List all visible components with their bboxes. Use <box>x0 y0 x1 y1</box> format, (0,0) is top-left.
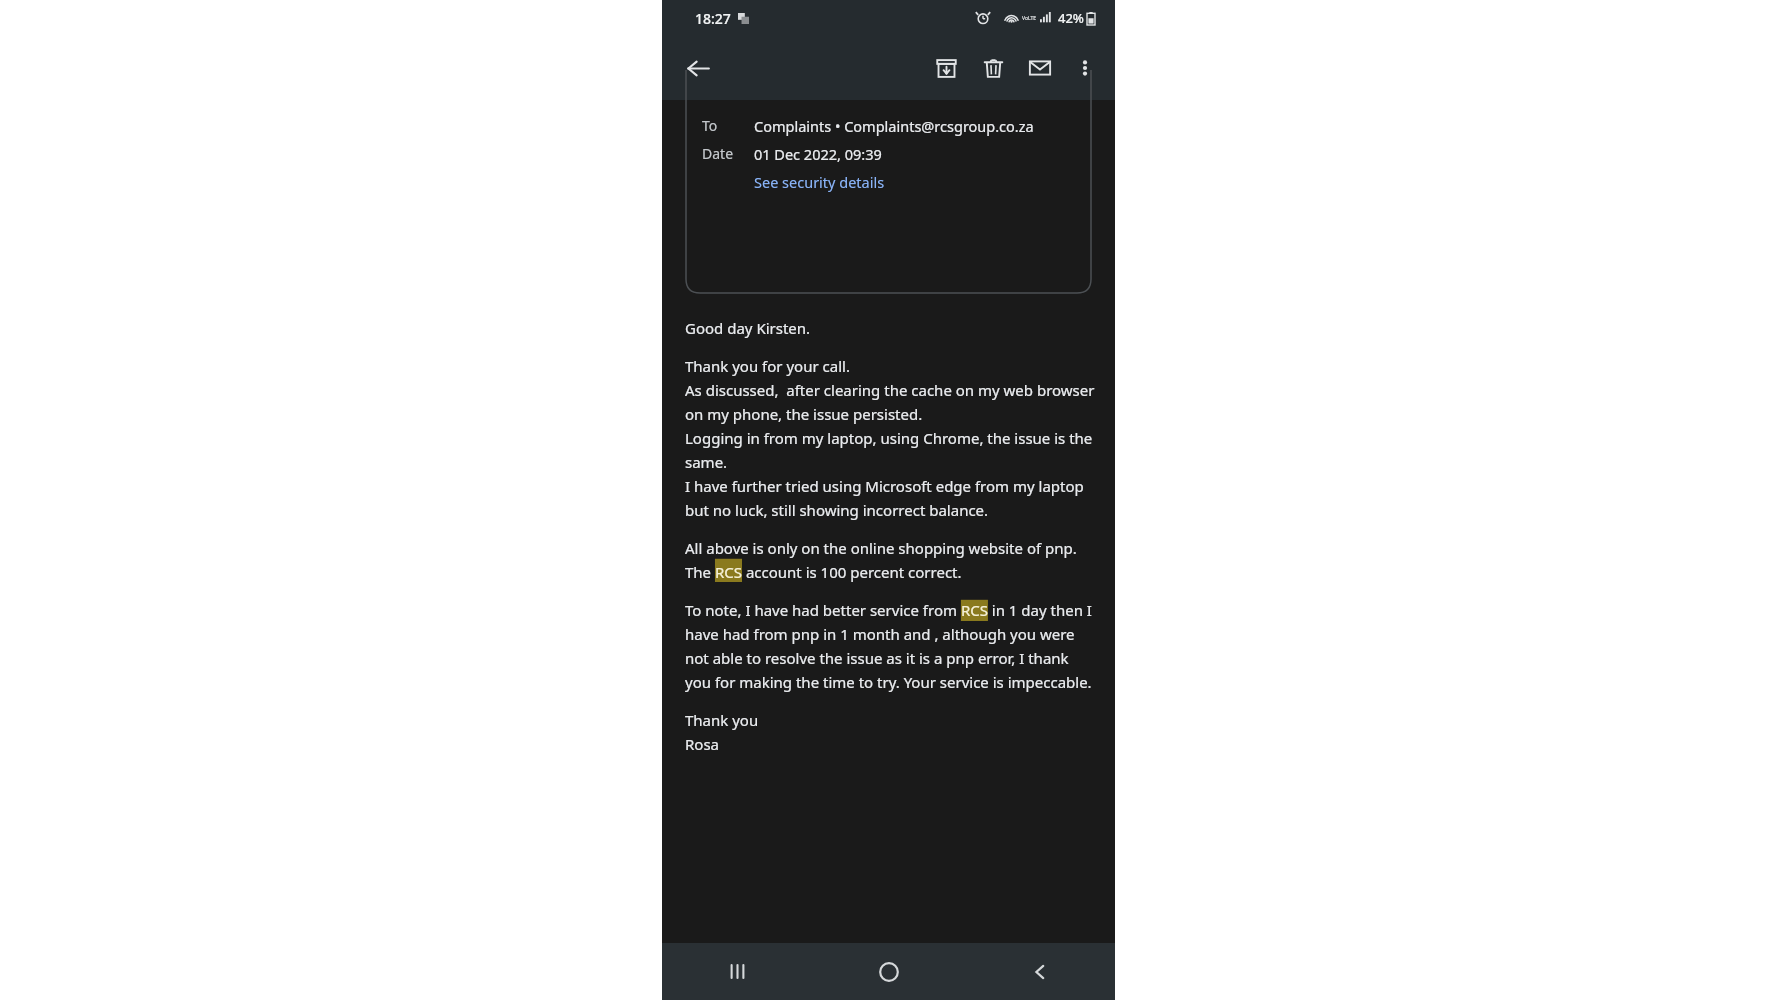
staticText: 18:27 <box>695 9 731 28</box>
staticText: VoLTE <box>1022 15 1037 22</box>
staticText: To note, I have had better service from … <box>685 600 1097 692</box>
staticText: Complaints • Complaints@rcsgroup.co.za <box>754 116 1034 136</box>
button[interactable]: Delete <box>971 46 1015 90</box>
staticText: 42% <box>1058 9 1084 27</box>
staticText: See security details <box>754 172 885 192</box>
button[interactable]: Back <box>676 46 720 90</box>
staticText: Thank you Rosa <box>685 710 759 754</box>
staticText: All above is only on the online shopping… <box>685 538 1097 582</box>
button[interactable]: Recents <box>662 943 813 1000</box>
staticText: Thank you for your call. As discussed, a… <box>685 356 1097 520</box>
staticText: 01 Dec 2022, 09:39 <box>754 144 882 164</box>
staticText: Good day Kirsten. <box>685 318 811 338</box>
button[interactable]: Mark as unread <box>1018 46 1062 90</box>
button[interactable]: To <box>686 100 1091 293</box>
button[interactable]: More options <box>1063 46 1107 90</box>
button[interactable]: Home <box>813 943 964 1000</box>
button[interactable]: Archive <box>924 46 968 90</box>
button[interactable]: Back <box>964 943 1115 1000</box>
button[interactable]: See security details <box>754 172 885 192</box>
staticText: To <box>702 116 718 135</box>
staticText: Date <box>702 144 734 163</box>
